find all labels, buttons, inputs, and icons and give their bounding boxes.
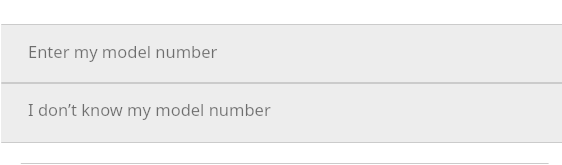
staticText: I don’t know my model number: [28, 98, 271, 120]
staticText: Enter my model number: [28, 40, 218, 62]
button[interactable]: I don’t know my model number: [1, 84, 562, 142]
button[interactable]: Enter my model number: [1, 25, 562, 82]
